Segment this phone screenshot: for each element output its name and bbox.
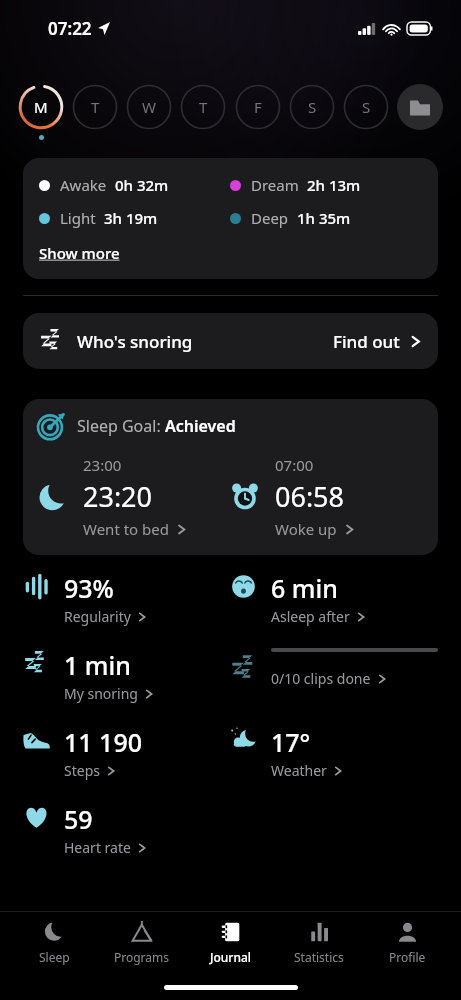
button[interactable]: 93%	[23, 571, 230, 626]
button[interactable]: S	[343, 84, 389, 130]
button[interactable]: T	[72, 84, 118, 130]
staticText: 1h 35m	[297, 208, 351, 228]
button[interactable]: Went to bed	[83, 519, 187, 539]
staticText: Sleep Goal:	[77, 415, 165, 437]
staticText: 3h 19m	[104, 208, 158, 228]
button[interactable]: Sleep Goal:	[23, 399, 438, 555]
button[interactable]: T	[180, 84, 226, 130]
staticText: Steps	[64, 761, 100, 780]
button[interactable]: S	[289, 84, 335, 130]
staticText: 07:22	[48, 17, 92, 40]
button[interactable]: 11 190	[23, 725, 230, 780]
button[interactable]: Statistics	[277, 917, 361, 969]
staticText: Deep	[251, 208, 289, 228]
staticText: Find out	[333, 330, 400, 353]
button[interactable]: M	[18, 84, 64, 130]
staticText: T	[199, 97, 208, 117]
staticText: 59	[64, 802, 93, 836]
staticText: Sleep	[39, 949, 70, 965]
staticText: S	[362, 97, 371, 117]
button[interactable]: Programs	[100, 917, 184, 969]
staticText: Dream	[251, 175, 299, 195]
staticText: My snoring	[64, 684, 138, 703]
button[interactable]: 17°	[230, 725, 438, 780]
button[interactable]: Awake	[23, 158, 438, 279]
staticText: Went to bed	[83, 519, 169, 539]
staticText: 23:20	[83, 478, 153, 515]
staticText: Awake	[60, 175, 107, 195]
staticText: 0h 32m	[115, 175, 169, 195]
button[interactable]: Who's snoring	[23, 313, 438, 369]
button[interactable]: W	[126, 84, 172, 130]
staticText: Statistics	[294, 949, 344, 965]
staticText: 06:58	[275, 478, 345, 515]
button[interactable]: 1 min	[23, 648, 230, 703]
button[interactable]: F	[235, 84, 281, 130]
staticText: Light	[60, 208, 96, 228]
staticText: Asleep after	[271, 607, 350, 626]
staticText: Regularity	[64, 607, 131, 626]
staticText: Woke up	[275, 519, 337, 539]
staticText: 17°	[271, 725, 311, 759]
button[interactable]: 59	[23, 802, 230, 857]
staticText: Achieved	[165, 415, 236, 437]
staticText: Journal	[210, 949, 252, 965]
button[interactable]: Sleep	[12, 917, 96, 969]
staticText: 23:00	[83, 455, 122, 475]
staticText: T	[91, 97, 100, 117]
staticText: Who's snoring	[77, 330, 193, 353]
staticText: Programs	[114, 949, 170, 965]
staticText: F	[254, 97, 262, 117]
staticText: 07:00	[275, 455, 314, 475]
button[interactable]: Show more	[39, 243, 120, 263]
staticText: Heart rate	[64, 838, 131, 857]
staticText: 1 min	[64, 648, 131, 682]
button[interactable]: 0/10 clips done	[230, 648, 438, 688]
button[interactable]: 6 min	[230, 571, 438, 626]
staticText: Profile	[389, 949, 426, 965]
staticText: Weather	[271, 761, 327, 780]
staticText: W	[142, 97, 156, 117]
button[interactable]: Folder	[397, 84, 443, 130]
button[interactable]: Profile	[365, 917, 449, 969]
staticText: 93%	[64, 571, 114, 605]
staticText: M	[34, 97, 48, 117]
staticText: 6 min	[271, 571, 338, 605]
button[interactable]: Woke up	[275, 519, 355, 539]
staticText: 11 190	[64, 725, 143, 759]
button[interactable]: Journal	[189, 917, 273, 969]
staticText: S	[308, 97, 317, 117]
staticText: 0/10 clips done	[271, 669, 371, 688]
staticText: 2h 13m	[307, 175, 361, 195]
